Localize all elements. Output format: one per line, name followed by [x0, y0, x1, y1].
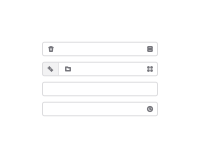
button[interactable] — [42, 62, 157, 76]
button[interactable] — [42, 82, 157, 96]
button[interactable]: Files — [62, 62, 73, 76]
button[interactable]: Effects — [42, 62, 58, 76]
button[interactable]: History — [144, 102, 155, 116]
button[interactable]: Grid — [144, 62, 155, 76]
button[interactable]: Delete — [45, 42, 56, 56]
button[interactable] — [42, 102, 157, 116]
button[interactable] — [42, 42, 157, 56]
button[interactable]: Layout — [144, 42, 155, 56]
